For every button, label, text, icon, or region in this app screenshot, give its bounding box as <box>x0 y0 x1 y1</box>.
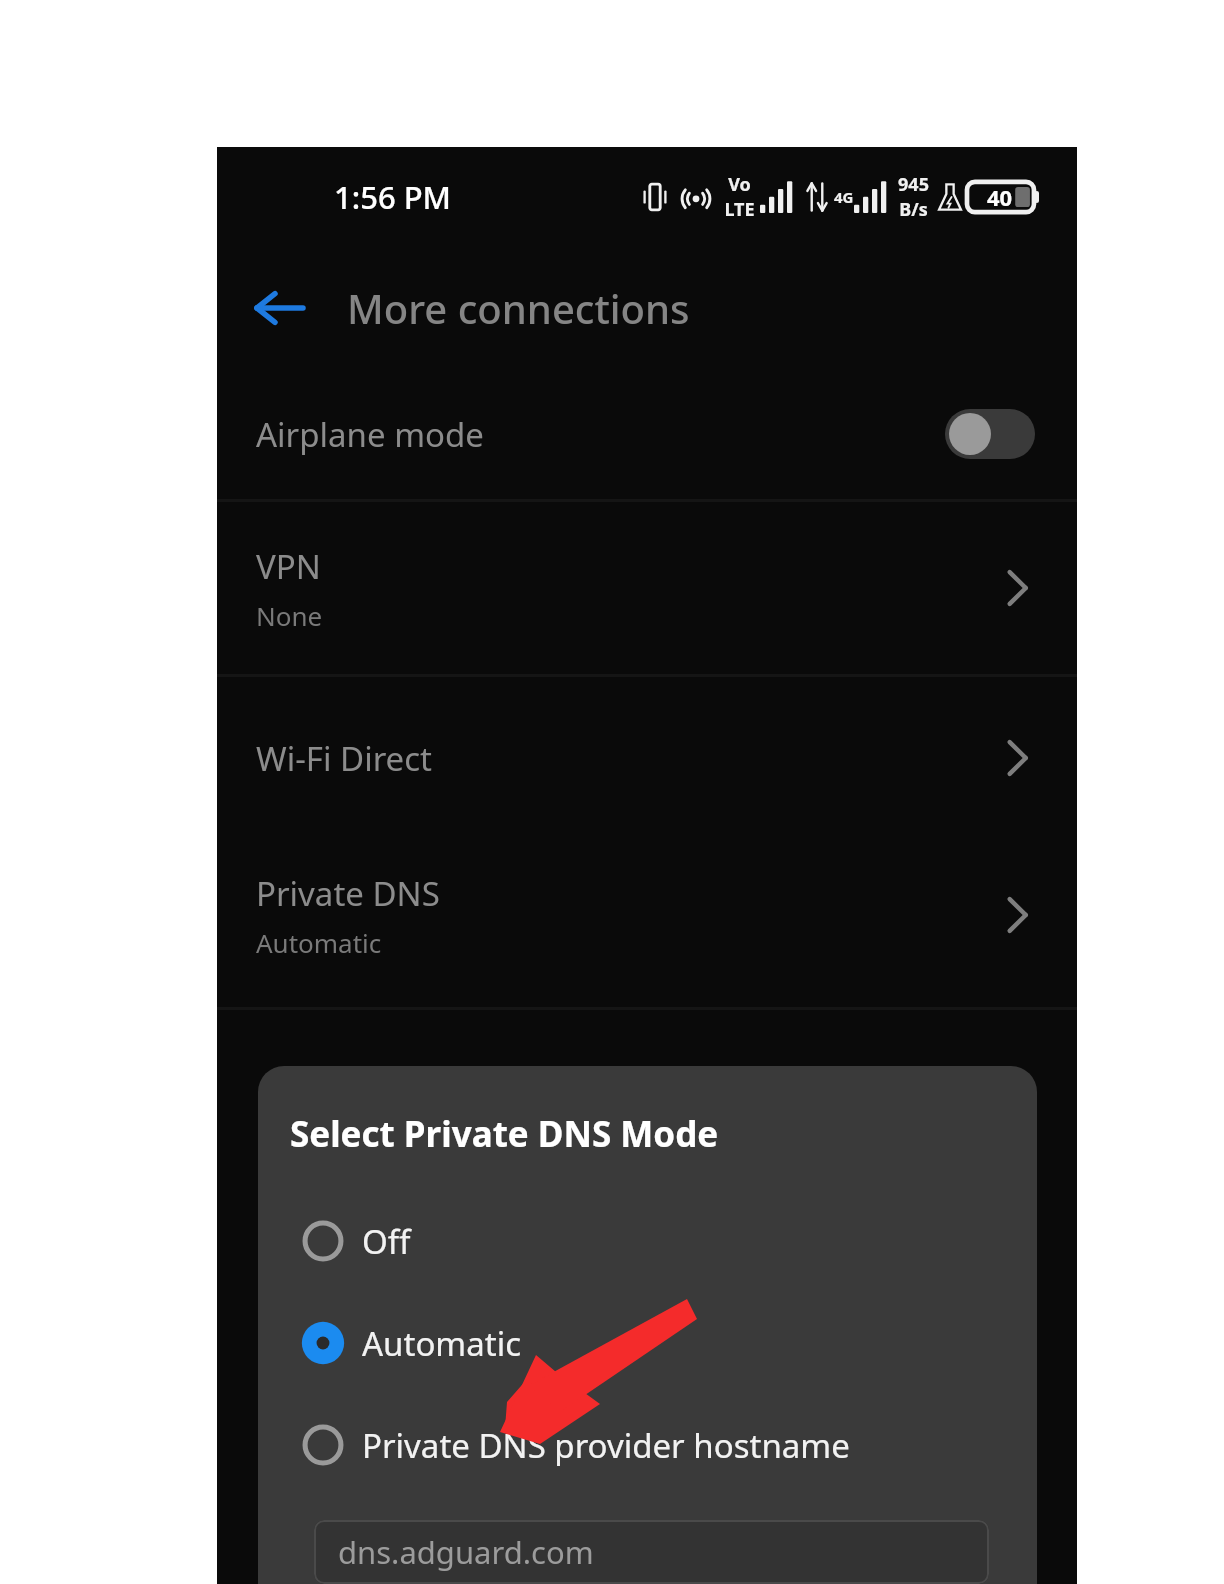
button[interactable]: Off <box>258 1210 1037 1272</box>
staticText: None <box>256 598 323 633</box>
staticText: Automatic <box>256 925 382 960</box>
staticText: VPN <box>256 544 321 589</box>
button[interactable]: Back <box>239 268 319 348</box>
staticText: Off <box>362 1219 411 1264</box>
staticText: Select Private DNS Mode <box>290 1110 719 1158</box>
button[interactable]: Airplane mode <box>217 369 1077 499</box>
staticText: 4G <box>834 187 854 207</box>
staticText: Airplane mode <box>256 412 484 457</box>
staticText: 40 <box>987 182 1013 212</box>
staticText: dns.adguard.com <box>338 1531 594 1573</box>
button[interactable]: Private DNS provider hostname <box>258 1414 1037 1476</box>
staticText: 945 <box>898 172 929 197</box>
staticText: B/s <box>899 197 928 222</box>
button[interactable]: dns.adguard.com <box>314 1520 989 1584</box>
button[interactable]: Private DNS <box>217 829 1077 1001</box>
button[interactable]: Automatic <box>258 1312 1037 1374</box>
staticText: Wi-Fi Direct <box>256 736 432 781</box>
staticText: More connections <box>347 281 690 335</box>
staticText: Vo <box>728 172 751 197</box>
button[interactable]: VPN <box>217 502 1077 674</box>
staticText: 1:56 PM <box>334 176 452 218</box>
staticText: Private DNS provider hostname <box>362 1423 850 1468</box>
staticText: Private DNS <box>256 871 440 916</box>
staticText: Automatic <box>362 1321 521 1366</box>
staticText: LTE <box>724 197 755 222</box>
button[interactable]: Wi-Fi Direct <box>217 687 1077 829</box>
